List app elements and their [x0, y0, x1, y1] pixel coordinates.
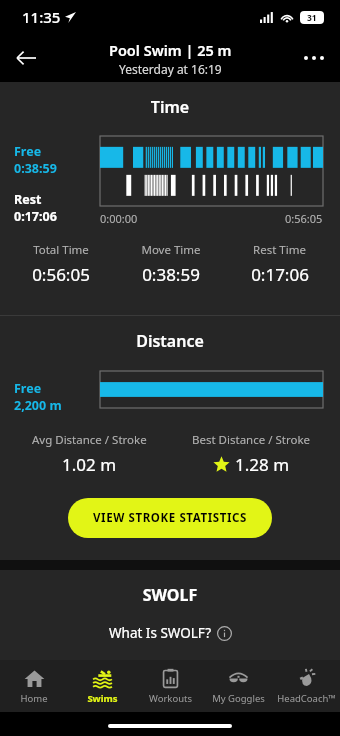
- staticText: Rest Time: [253, 242, 306, 258]
- staticText: Rest: [14, 191, 42, 208]
- staticText: 0:17:06: [14, 208, 57, 225]
- staticText: 31: [307, 12, 317, 24]
- button[interactable]: Workouts: [136, 660, 204, 712]
- staticText: Home: [20, 692, 48, 705]
- staticText: 0:56:05: [32, 263, 90, 286]
- button[interactable]: More options: [294, 38, 334, 78]
- button[interactable]: VIEW STROKE STATISTICS: [68, 498, 272, 538]
- staticText: 0:00:00: [100, 211, 138, 226]
- button[interactable]: Home: [0, 660, 68, 712]
- staticText: 0:17:06: [251, 263, 309, 286]
- button[interactable]: Swims: [68, 660, 136, 712]
- button[interactable]: HeadCoach™: [272, 660, 340, 712]
- staticText: 1.02 m: [62, 453, 117, 476]
- staticText: Move Time: [141, 242, 201, 258]
- staticText: Total Time: [33, 242, 89, 258]
- staticText: Time: [0, 96, 340, 118]
- button[interactable]: What Is SWOLF?: [0, 624, 340, 642]
- staticText: 11:35: [22, 7, 61, 27]
- staticText: VIEW STROKE STATISTICS: [93, 510, 247, 526]
- staticText: HeadCoach™: [277, 692, 336, 705]
- staticText: Pool Swim | 25 m: [109, 40, 232, 60]
- staticText: 2,200 m: [14, 397, 62, 414]
- staticText: My Goggles: [212, 692, 265, 705]
- staticText: 1.28 m: [235, 453, 290, 476]
- staticText: Avg Distance / Stroke: [32, 432, 147, 448]
- staticText: 0:38:59: [142, 263, 200, 286]
- button[interactable]: Back: [6, 38, 46, 78]
- staticText: 0:56:05: [285, 211, 323, 226]
- staticText: Best Distance / Stroke: [192, 432, 311, 448]
- staticText: Free: [14, 380, 42, 397]
- button[interactable]: My Goggles: [204, 660, 272, 712]
- staticText: Free: [14, 143, 42, 160]
- staticText: Workouts: [149, 692, 192, 705]
- staticText: SWOLF: [0, 584, 340, 606]
- staticText: Yesterday at 16:19: [119, 61, 222, 77]
- staticText: 0:38:59: [14, 160, 57, 177]
- staticText: Swims: [87, 692, 118, 705]
- staticText: Distance: [0, 330, 340, 352]
- staticText: What Is SWOLF?: [109, 624, 211, 642]
